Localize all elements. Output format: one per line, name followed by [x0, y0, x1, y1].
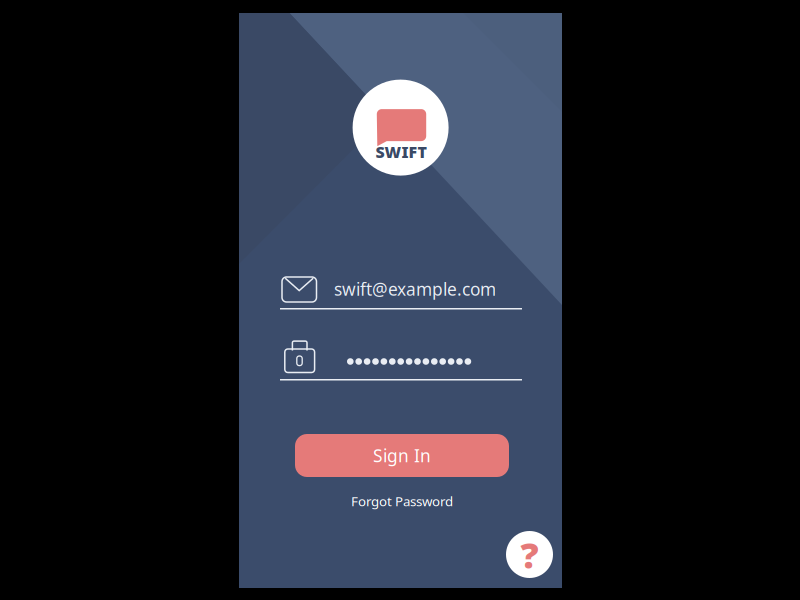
staticText: Sign In	[373, 444, 431, 467]
staticText: ?	[520, 531, 538, 578]
staticText: SWIFT	[375, 141, 426, 162]
button[interactable]: Help	[506, 531, 553, 578]
staticText: Forgot Password	[351, 492, 453, 510]
button[interactable]: Sign In	[295, 434, 509, 477]
button[interactable]: Forgot Password	[337, 491, 467, 511]
staticText: swift@example.com	[334, 277, 496, 300]
button[interactable]: swift@example.com	[280, 276, 522, 310]
button[interactable]	[280, 340, 522, 381]
